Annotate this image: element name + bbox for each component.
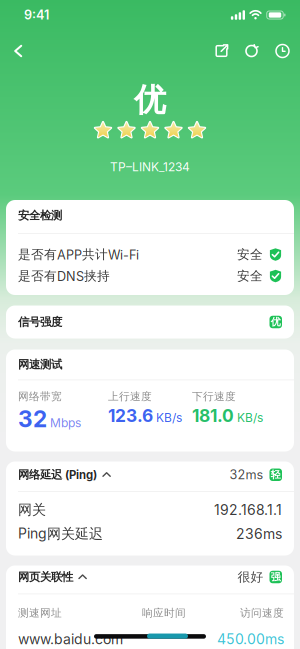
staticText: 下行速度 [192, 390, 236, 403]
staticText: 181.0 [192, 405, 234, 426]
staticText: 236ms [236, 525, 282, 542]
staticText: Ping网关延迟 [18, 525, 103, 543]
staticText: www.baidu.com [18, 631, 123, 648]
staticText: 9:41 [24, 7, 49, 23]
staticText: 上行速度 [108, 390, 152, 403]
staticText: 信号强度 [18, 315, 62, 329]
staticText: 是否有DNS挟持 [18, 268, 110, 284]
staticText: 网络带宽 [18, 390, 62, 403]
staticText: 测速网址 [18, 606, 62, 620]
staticText: 网关 [18, 501, 46, 519]
staticText: 网页关联性 [18, 570, 73, 584]
staticText: 32ms [229, 467, 263, 482]
staticText: 32 [18, 405, 47, 433]
staticText: 450.00ms [217, 631, 284, 648]
staticText: 是否有APP共计Wi-Fi [18, 247, 139, 263]
staticText: 优 [134, 80, 166, 120]
staticText: 安全 [237, 268, 263, 284]
staticText: 网速测试 [18, 357, 62, 372]
staticText: 访问速度 [240, 606, 284, 620]
staticText: KB/s [156, 410, 182, 425]
staticText: 123.6 [108, 405, 153, 426]
button[interactable]: TP–LINK_1234 [110, 160, 190, 174]
staticText: 轻 [271, 468, 281, 481]
button[interactable]: 网页关联性 [6, 565, 294, 593]
button[interactable]: Share [207, 36, 236, 66]
button[interactable]: History [267, 36, 300, 66]
staticText: 192.168.1.1 [214, 501, 282, 518]
button[interactable]: Refresh [236, 36, 267, 66]
staticText: KB/s [237, 410, 263, 425]
button[interactable]: 网络延迟 (Ping) [6, 461, 294, 491]
staticText: Mbps [50, 416, 81, 430]
staticText: 网络延迟 (Ping) [18, 468, 97, 482]
button[interactable]: Back [0, 36, 33, 66]
staticText: 响应时间 [142, 606, 186, 620]
staticText: 安全 [237, 247, 263, 263]
staticText: 很好 [237, 569, 263, 585]
staticText: TP–LINK_1234 [110, 160, 190, 174]
staticText: 强 [271, 571, 281, 583]
staticText: 优 [271, 316, 281, 328]
staticText: 安全检测 [18, 208, 62, 223]
